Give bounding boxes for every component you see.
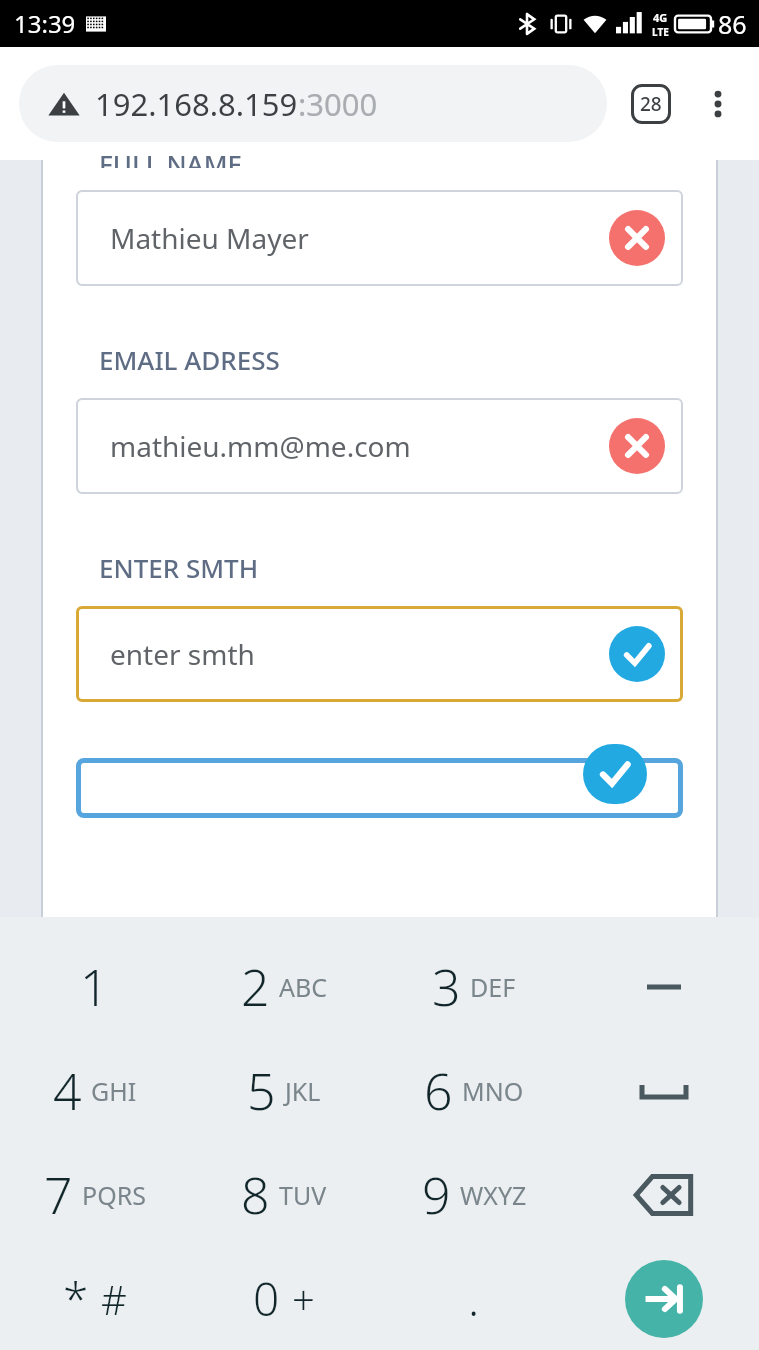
button[interactable]: Backspace	[569, 1143, 759, 1247]
staticText: ABC	[279, 970, 328, 1004]
staticText: 4	[53, 1057, 82, 1125]
button[interactable]: Next	[569, 1247, 759, 1350]
staticText: mathieu.mm@me.com	[110, 427, 411, 465]
button[interactable]: Mathieu Mayer	[76, 190, 683, 286]
button[interactable]: 5	[189, 1039, 379, 1143]
staticText: JKL	[285, 1074, 321, 1108]
button[interactable]: Space	[569, 1039, 759, 1143]
button[interactable]: *	[0, 1247, 189, 1350]
staticText: .	[468, 1267, 480, 1330]
staticText: ENTER SMTH	[99, 550, 259, 585]
staticText: WXYZ	[460, 1178, 527, 1212]
staticText: 9	[422, 1161, 451, 1229]
staticText: #	[101, 1272, 127, 1326]
staticText: DEF	[470, 970, 516, 1004]
staticText: FULL NAME	[99, 146, 243, 168]
button[interactable]: 1	[0, 935, 189, 1039]
button[interactable]: enter smth	[76, 606, 683, 702]
button[interactable]: 2	[189, 935, 379, 1039]
staticText: GHI	[91, 1074, 137, 1108]
button[interactable]: mathieu.mm@me.com	[76, 398, 683, 494]
button[interactable]: 0	[189, 1247, 379, 1350]
staticText: MNO	[462, 1074, 524, 1108]
button[interactable]: 9	[379, 1143, 569, 1247]
staticText: :3000	[298, 83, 378, 125]
button[interactable]: Clear	[609, 418, 665, 474]
staticText: 6	[424, 1057, 453, 1125]
button[interactable]: .	[379, 1247, 569, 1350]
staticText: 192.168.8.159	[95, 83, 298, 125]
staticText: 1	[80, 953, 109, 1021]
staticText: enter smth	[110, 635, 255, 673]
staticText: 28	[640, 91, 662, 117]
button[interactable]: 8	[189, 1143, 379, 1247]
staticText: PQRS	[82, 1178, 146, 1212]
staticText: 7	[44, 1161, 73, 1229]
staticText: TUV	[279, 1178, 327, 1212]
button[interactable]: Valid	[609, 626, 665, 682]
staticText: 0	[253, 1267, 280, 1330]
staticText: EMAIL ADRESS	[99, 342, 280, 377]
button[interactable]: Valid	[583, 744, 647, 804]
staticText: 5	[247, 1057, 276, 1125]
button[interactable]: Tabs, 28 open	[623, 76, 679, 132]
button[interactable]: 192.168.8.159	[19, 65, 607, 142]
staticText: +	[292, 1272, 315, 1326]
staticText: 4G	[653, 10, 668, 25]
button[interactable]: 6	[379, 1039, 569, 1143]
staticText: *	[63, 1267, 89, 1330]
button[interactable]: 7	[0, 1143, 189, 1247]
staticText: 3	[432, 953, 461, 1021]
button[interactable]: Clear	[609, 210, 665, 266]
staticText: 13:39	[14, 7, 76, 40]
button[interactable]: 4	[0, 1039, 189, 1143]
staticText: Mathieu Mayer	[110, 219, 309, 257]
button[interactable]: 3	[379, 935, 569, 1039]
button[interactable]	[76, 758, 683, 818]
button[interactable]: More options	[689, 75, 747, 133]
staticText: 2	[241, 953, 270, 1021]
staticText: 86	[718, 7, 747, 41]
button[interactable]	[569, 935, 759, 1039]
staticText: 8	[241, 1161, 270, 1229]
staticText: LTE	[652, 25, 669, 39]
